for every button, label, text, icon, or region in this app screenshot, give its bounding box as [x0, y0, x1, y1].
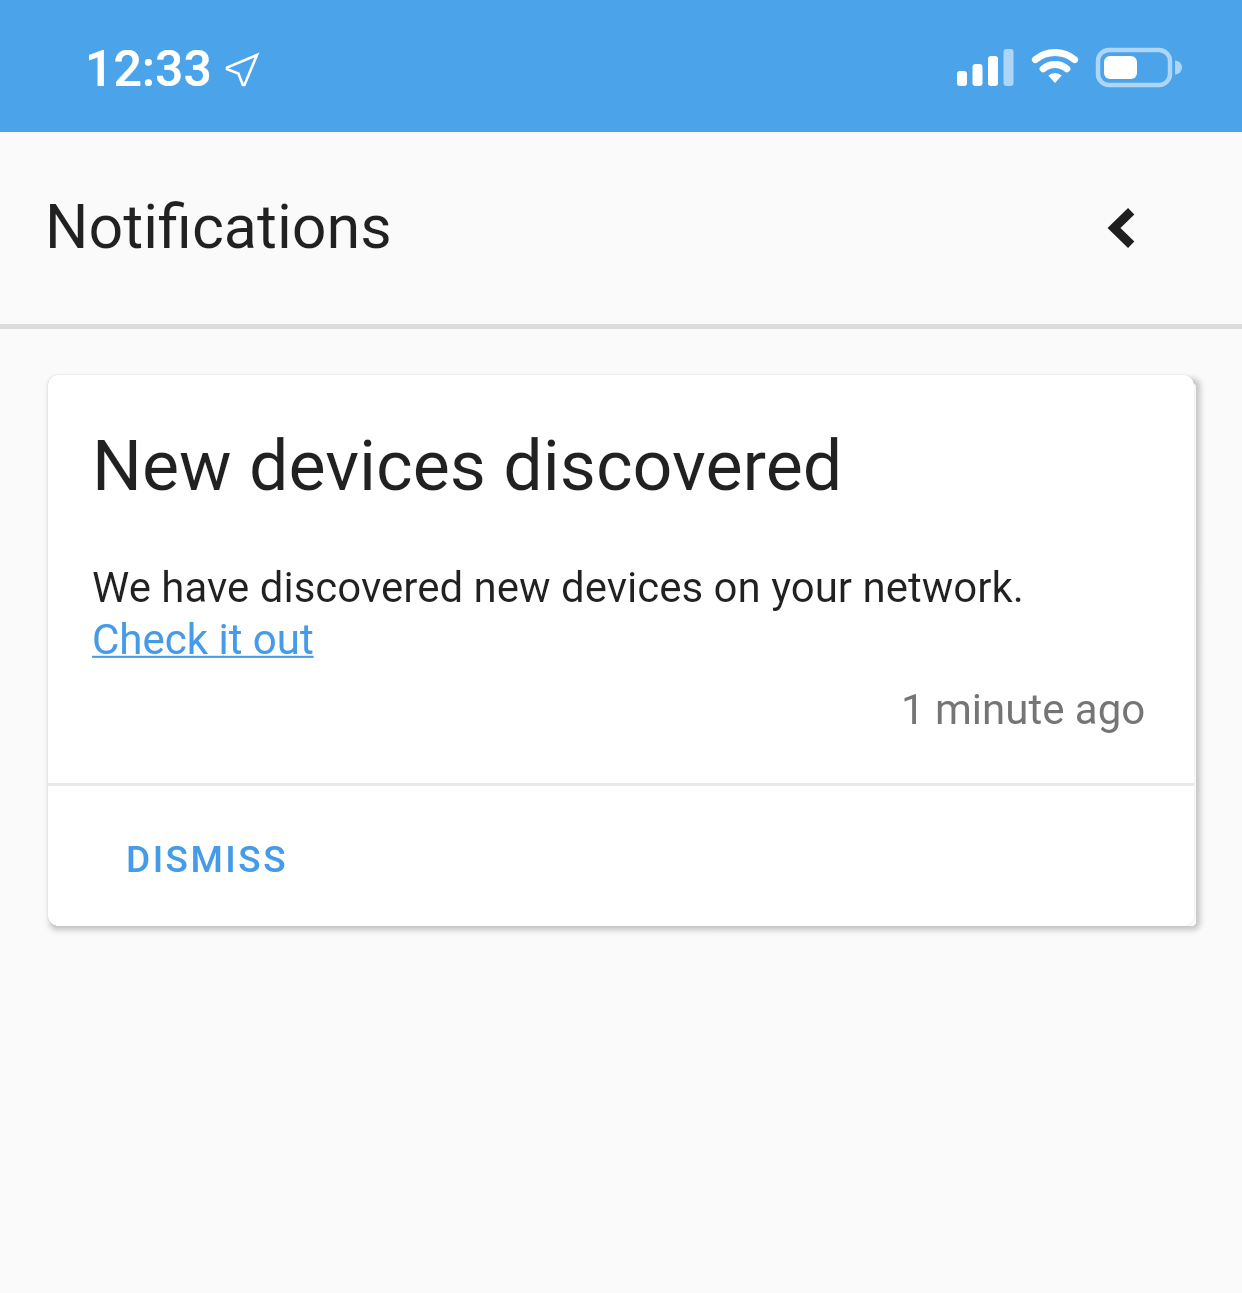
staticText: New devices discovered	[92, 425, 843, 507]
staticText: 12:33	[85, 40, 212, 99]
staticText: DISMISS	[126, 838, 288, 881]
staticText: We have discovered new devices on your n…	[92, 563, 1024, 612]
staticText: Notifications	[45, 191, 392, 262]
button[interactable]: Check it out	[92, 615, 314, 664]
staticText: 1 minute ago	[901, 685, 1146, 734]
button[interactable]: DISMISS	[102, 822, 312, 897]
button[interactable]	[1088, 192, 1160, 264]
